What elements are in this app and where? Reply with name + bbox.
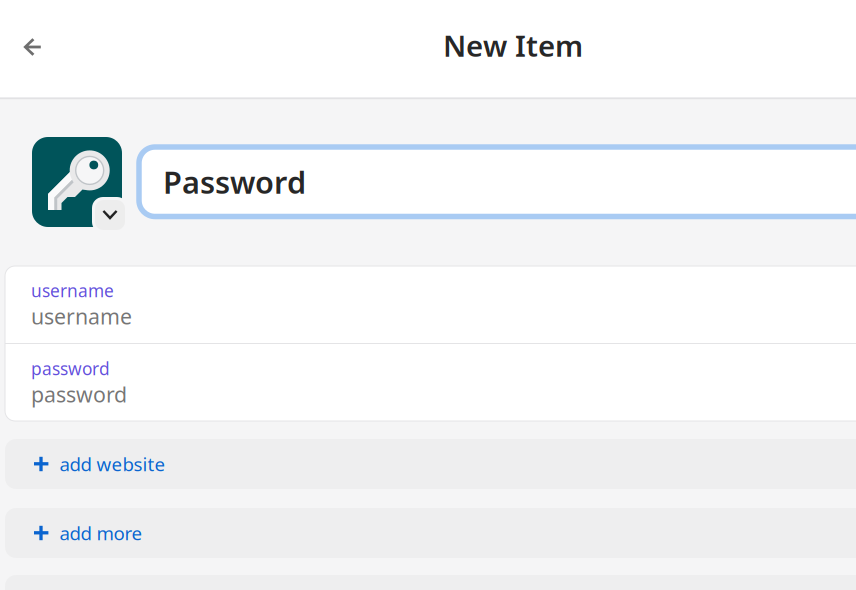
button[interactable]: Change item type bbox=[92, 197, 128, 233]
staticText: Password bbox=[163, 161, 306, 202]
button[interactable]: add more bbox=[5, 508, 856, 558]
button[interactable]: Password bbox=[139, 147, 856, 216]
button[interactable]: Back bbox=[14, 29, 50, 65]
button[interactable]: Item type bbox=[32, 137, 122, 227]
staticText: New Item bbox=[443, 26, 583, 65]
staticText: username bbox=[31, 302, 132, 330]
button[interactable]: username bbox=[5, 266, 856, 343]
button[interactable]: password bbox=[5, 344, 856, 421]
staticText: password bbox=[31, 357, 110, 380]
staticText: username bbox=[31, 279, 114, 302]
staticText: add more bbox=[59, 521, 142, 545]
staticText: add website bbox=[59, 452, 165, 476]
staticText: password bbox=[31, 380, 127, 408]
button[interactable]: add website bbox=[5, 439, 856, 489]
